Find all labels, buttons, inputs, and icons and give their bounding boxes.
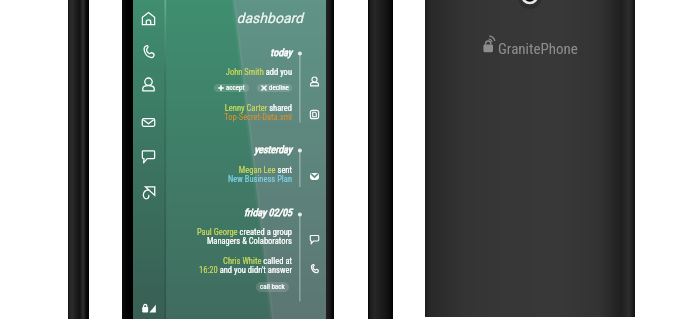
staticText: Lenny Carter shared	[176, 103, 292, 113]
button[interactable]: New mail	[306, 168, 322, 184]
button[interactable]: Messages	[138, 146, 158, 166]
staticText: John Smith add you	[176, 67, 292, 77]
staticText: Managers & Colaborators	[176, 236, 292, 246]
button[interactable]: Contacts	[138, 74, 158, 94]
staticText: friday 02/05	[176, 207, 292, 219]
button[interactable]: accept	[214, 84, 249, 92]
staticText: call back	[260, 283, 285, 291]
staticText: Megan Lee sent	[176, 165, 292, 175]
staticText: Paul George created a group	[176, 227, 292, 237]
button[interactable]: Missed call	[306, 260, 322, 276]
staticText: decline	[269, 84, 289, 92]
staticText: today	[176, 47, 292, 59]
button[interactable]: Calls	[138, 41, 158, 61]
staticText: dashboard	[176, 10, 303, 26]
staticText: yesterday	[176, 144, 292, 156]
staticText: GranitePhone	[498, 40, 578, 58]
button[interactable]: decline	[257, 84, 292, 92]
staticText: Chris White called at	[176, 256, 292, 266]
button[interactable]: Mail	[138, 112, 158, 132]
staticText: 16:20 and you didn't answer	[176, 265, 292, 275]
staticText: New Business Plan	[176, 174, 292, 184]
button[interactable]: call back	[256, 282, 289, 292]
button[interactable]: Share	[138, 182, 158, 202]
button[interactable]: Secure signal strength	[142, 300, 158, 313]
button[interactable]: New message	[306, 231, 322, 247]
staticText: accept	[226, 84, 245, 92]
button[interactable]: Friend request	[306, 73, 322, 89]
button[interactable]: Home	[138, 8, 158, 28]
staticText: Top-Secret-Data.xml	[176, 112, 292, 122]
button[interactable]: Shared file	[306, 106, 322, 122]
